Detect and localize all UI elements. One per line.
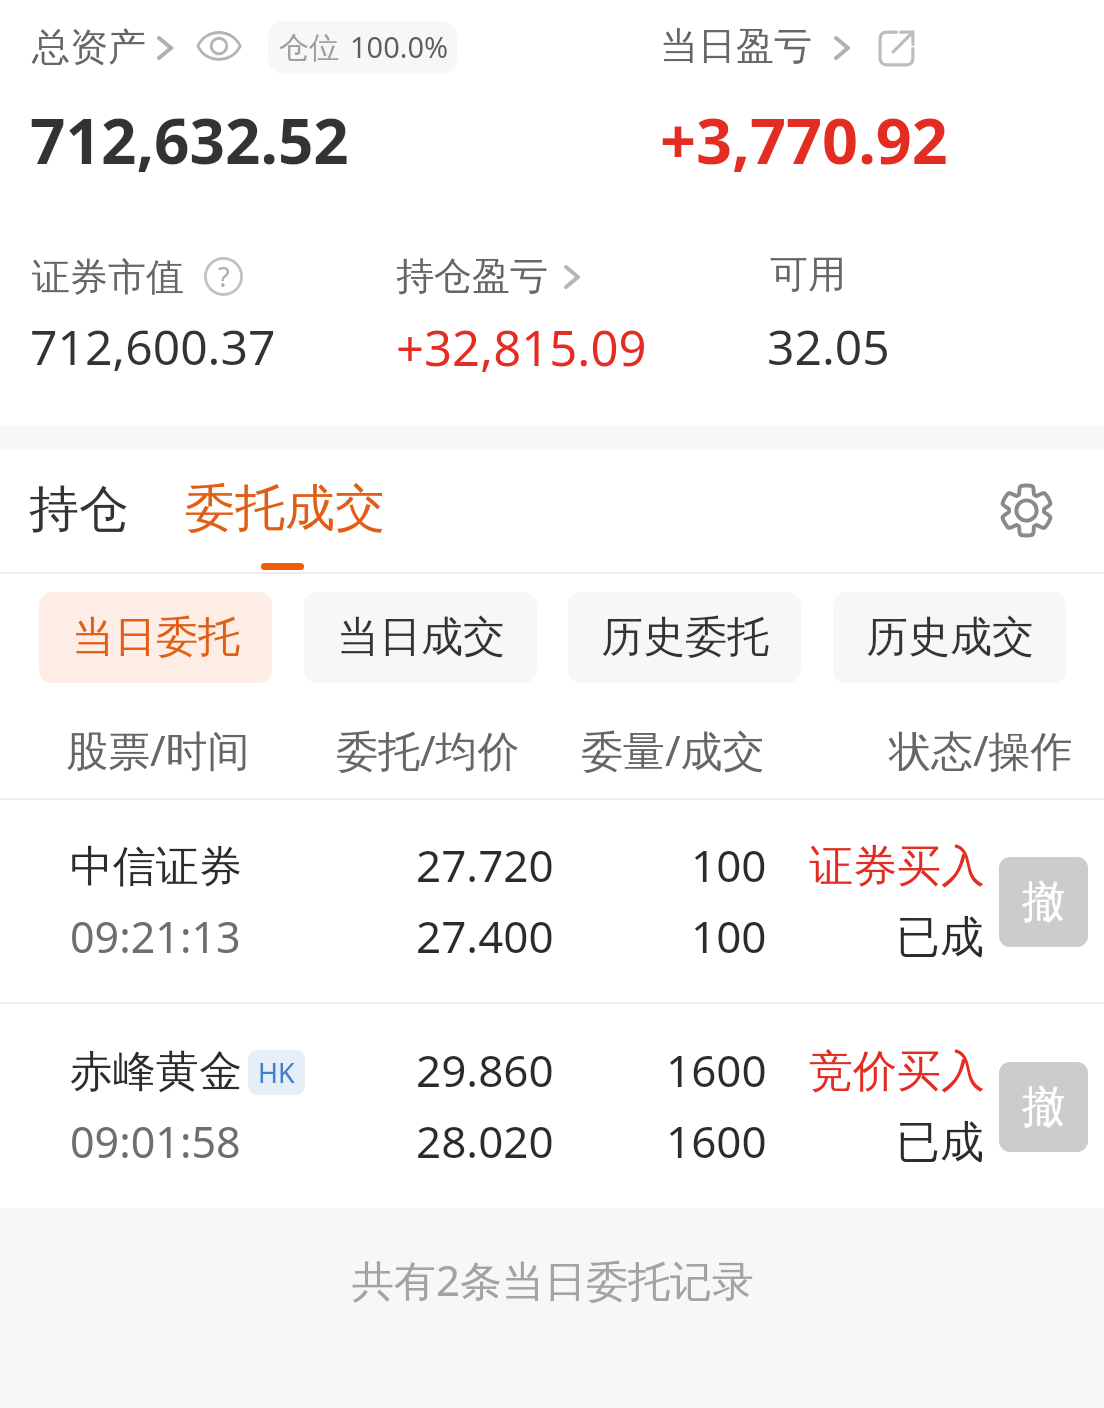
staticText: 27.720 — [416, 835, 554, 895]
button[interactable]: 历史委托 — [568, 592, 801, 683]
staticText: 竞价买入 — [809, 1044, 985, 1099]
staticText: 已成 — [896, 1115, 984, 1170]
staticText: 28.020 — [416, 1111, 554, 1171]
staticText: 中信证券 — [70, 840, 242, 894]
staticText: 100.0% — [350, 27, 449, 66]
staticText: 当日盈亏 — [660, 22, 812, 70]
staticText: 股票/时间 — [66, 721, 250, 778]
button[interactable]: 持仓 — [8, 462, 148, 550]
staticText: 100 — [691, 906, 767, 966]
staticText: 状态/操作 — [889, 721, 1073, 778]
staticText: 1600 — [666, 1040, 767, 1100]
staticText: 撤 — [1022, 1080, 1065, 1134]
staticText: 712,632.52 — [30, 98, 349, 182]
staticText: 32.05 — [767, 314, 890, 379]
button[interactable]: 委托成交 — [170, 462, 396, 550]
button[interactable]: 仓位 — [268, 21, 457, 74]
staticText: HK — [258, 1054, 295, 1091]
button[interactable]: 历史成交 — [833, 592, 1066, 683]
staticText: 证券市值 — [32, 253, 184, 301]
staticText: 持仓盈亏 — [396, 252, 548, 300]
staticText: 09:01:58 — [70, 1112, 241, 1171]
staticText: 29.860 — [416, 1040, 554, 1100]
button[interactable]: 赤峰黄金 — [0, 1004, 1104, 1208]
staticText: +3,770.92 — [660, 97, 948, 183]
staticText: 共有2条当日委托记录 — [352, 1251, 755, 1308]
button[interactable]: 撤 — [999, 1062, 1088, 1152]
button[interactable]: 中信证券 — [0, 799, 1104, 1003]
staticText: 当日委托 — [72, 611, 240, 664]
staticText: 撤 — [1022, 875, 1065, 929]
staticText: 已成 — [896, 910, 984, 965]
button[interactable]: What is market value? — [204, 257, 243, 296]
button[interactable]: 当日成交 — [304, 592, 537, 683]
staticText: 仓位 — [279, 29, 339, 67]
staticText: 历史委托 — [601, 611, 769, 664]
staticText: 委量/成交 — [581, 721, 765, 778]
staticText: 712,600.37 — [30, 314, 276, 379]
button[interactable]: 当日盈亏 — [656, 16, 856, 74]
button[interactable]: 撤 — [999, 857, 1088, 947]
button[interactable]: 持仓盈亏 — [392, 248, 587, 300]
staticText: 委托成交 — [185, 477, 385, 540]
staticText: 当日成交 — [337, 611, 505, 664]
staticText: 持仓 — [29, 478, 129, 541]
staticText: 可用 — [770, 250, 846, 298]
staticText: 1600 — [666, 1111, 767, 1171]
staticText: 委托/均价 — [336, 721, 520, 778]
staticText: 100 — [691, 835, 767, 895]
staticText: 09:21:13 — [70, 907, 241, 966]
button[interactable]: 总资产 — [28, 16, 178, 74]
button[interactable]: Hide amounts — [196, 31, 242, 61]
staticText: 总资产 — [32, 23, 146, 71]
staticText: 27.400 — [416, 906, 554, 966]
staticText: +32,815.09 — [396, 314, 647, 381]
staticText: 证券买入 — [809, 839, 985, 894]
button[interactable]: 当日委托 — [39, 592, 272, 683]
staticText: ? — [218, 258, 230, 295]
button[interactable]: Share — [872, 24, 920, 72]
button[interactable]: Settings — [994, 478, 1058, 542]
staticText: 历史成交 — [866, 611, 1034, 664]
staticText: 赤峰黄金 — [70, 1045, 242, 1099]
